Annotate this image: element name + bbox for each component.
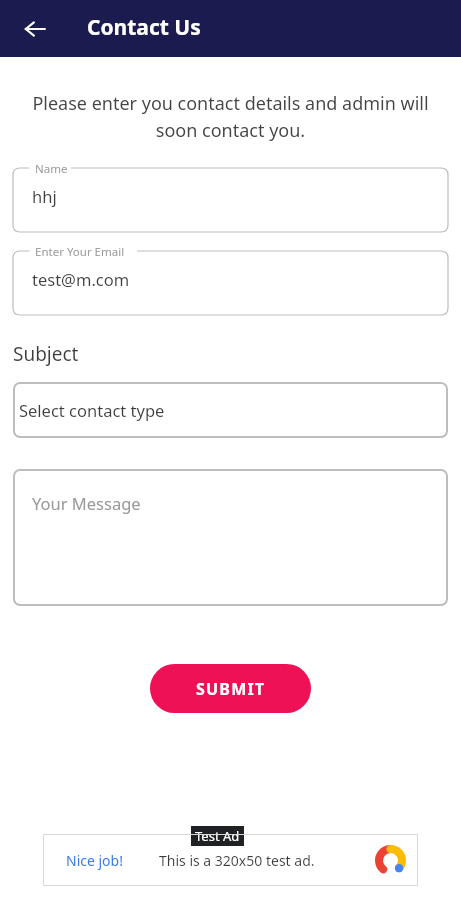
staticText: Contact Us bbox=[87, 13, 201, 42]
staticText: Please enter you contact details and adm… bbox=[29, 91, 432, 142]
button[interactable]: Your Message bbox=[13, 469, 448, 606]
staticText: Nice job! bbox=[66, 851, 123, 870]
staticText: Select contact type bbox=[19, 399, 165, 421]
button[interactable]: Enter Your Email bbox=[13, 251, 448, 315]
button[interactable]: Back bbox=[14, 8, 56, 50]
staticText: test@m.com bbox=[32, 268, 130, 290]
button[interactable]: Select contact type bbox=[13, 382, 448, 438]
staticText: SUBMIT bbox=[196, 678, 266, 700]
staticText: hhj bbox=[32, 185, 57, 207]
staticText: Test Ad bbox=[195, 827, 240, 845]
staticText: Your Message bbox=[32, 492, 141, 514]
button[interactable]: Nice job! bbox=[43, 834, 418, 886]
staticText: Name bbox=[35, 161, 68, 177]
button[interactable]: SUBMIT bbox=[150, 664, 311, 713]
staticText: Enter Your Email bbox=[35, 244, 125, 260]
staticText: Subject bbox=[13, 341, 79, 367]
button[interactable]: Name bbox=[13, 168, 448, 232]
staticText: This is a 320x50 test ad. bbox=[159, 851, 315, 870]
